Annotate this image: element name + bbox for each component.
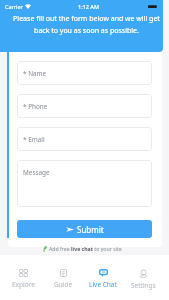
staticText: Settings [131, 281, 156, 290]
staticText: * Phone [23, 102, 48, 111]
staticText: Please fill out the form below and we wi… [8, 14, 165, 35]
staticText: * Email [23, 135, 45, 144]
button[interactable]: Message [17, 160, 152, 207]
staticText: Explore [12, 280, 35, 289]
button[interactable]: Guide [43, 255, 83, 300]
staticText: Guide [54, 280, 73, 289]
button[interactable]: Submit [17, 220, 152, 238]
other: Guide [60, 269, 67, 277]
staticText: Message [23, 168, 50, 177]
staticText: Live Chat [89, 280, 117, 289]
staticText: Add free live chat to your site [49, 245, 122, 252]
button[interactable]: * Name [17, 61, 152, 85]
staticText: Carrier [5, 3, 23, 10]
button[interactable]: * Phone [17, 94, 152, 118]
other: Settings [140, 269, 147, 278]
button[interactable]: * Email [17, 127, 152, 151]
staticText: * Name [23, 69, 47, 78]
staticText: Submit [77, 224, 104, 235]
button[interactable]: Settings [123, 255, 163, 300]
button[interactable]: Explore [4, 255, 43, 300]
button[interactable]: Live Chat [83, 255, 123, 300]
other: Live Chat [99, 269, 108, 277]
other: Explore [19, 269, 28, 277]
staticText: 1:12 AM [78, 3, 100, 10]
